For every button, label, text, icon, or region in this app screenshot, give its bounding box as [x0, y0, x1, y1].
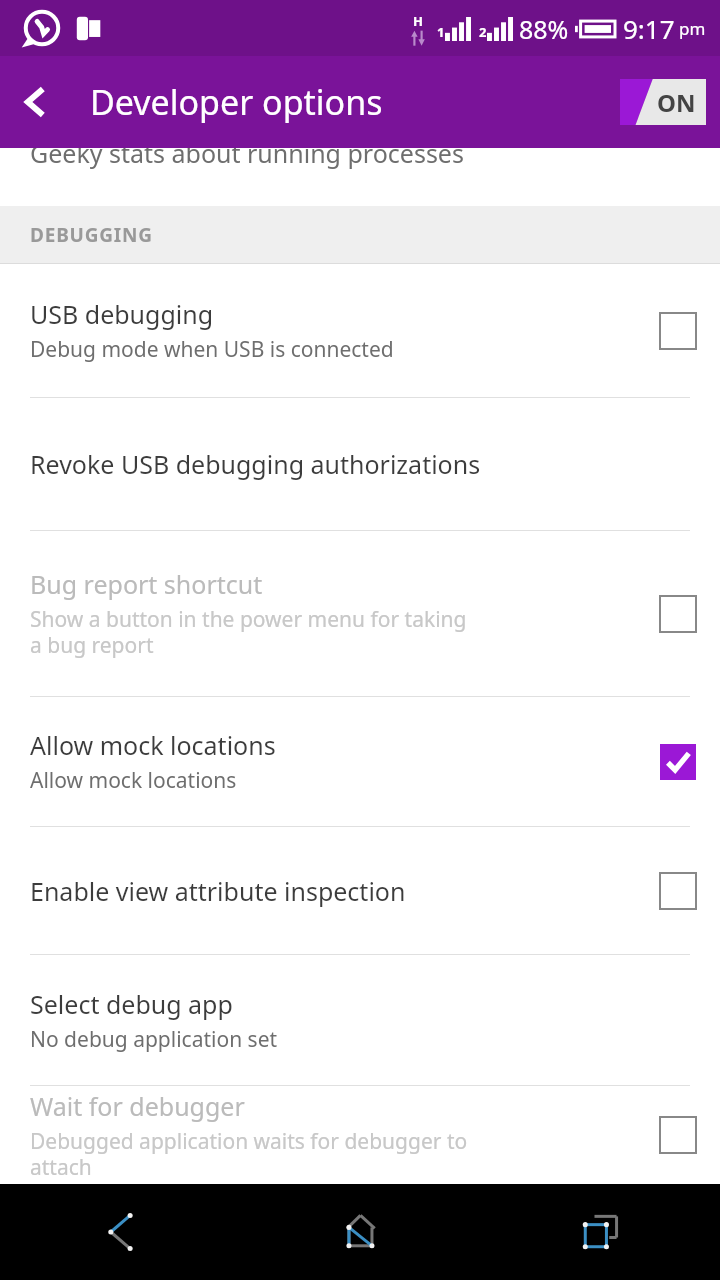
staticText: Developer options	[90, 79, 383, 125]
button[interactable]: Back	[0, 1184, 240, 1280]
staticText: DEBUGGING	[30, 222, 153, 248]
staticText: 2	[479, 23, 487, 41]
staticText: No debug application set	[30, 1025, 278, 1054]
button[interactable]: Wait for debugger	[0, 1086, 720, 1184]
staticText: Geeky stats about running processes	[30, 148, 464, 170]
staticText: Debug mode when USB is connected	[30, 335, 394, 364]
staticText: Select debug app	[30, 987, 233, 1021]
staticText: ON	[657, 86, 696, 119]
staticText: Bug report shortcut	[30, 567, 263, 601]
staticText: 9:17	[623, 11, 675, 46]
staticText: pm	[679, 17, 706, 40]
staticText: 1	[437, 23, 445, 41]
staticText: H	[413, 12, 423, 30]
button[interactable]: Bug report shortcut	[0, 531, 720, 696]
staticText: Show a button in the power menu for taki…	[30, 605, 467, 660]
button[interactable]: Recent apps	[480, 1184, 720, 1280]
staticText: Enable view attribute inspection	[30, 874, 406, 908]
staticText: USB debugging	[30, 297, 214, 331]
button[interactable]: Geeky stats about running processes	[0, 148, 720, 206]
staticText: Debugged application waits for debugger …	[30, 1127, 468, 1182]
staticText: Allow mock locations	[30, 728, 276, 762]
button[interactable]: Back	[0, 66, 72, 138]
button[interactable]: Enable view attribute inspection	[0, 827, 720, 954]
button[interactable]: Allow mock locations	[0, 697, 720, 826]
button[interactable]: Select debug app	[0, 955, 720, 1085]
button[interactable]: Home	[240, 1184, 480, 1280]
staticText: Revoke USB debugging authorizations	[30, 447, 481, 481]
button[interactable]: Revoke USB debugging authorizations	[0, 398, 720, 530]
staticText: Allow mock locations	[30, 766, 237, 795]
button[interactable]: Developer options toggle, on	[620, 79, 706, 125]
button[interactable]: USB debugging	[0, 264, 720, 397]
staticText: 88%	[519, 12, 569, 46]
staticText: Wait for debugger	[30, 1089, 245, 1123]
